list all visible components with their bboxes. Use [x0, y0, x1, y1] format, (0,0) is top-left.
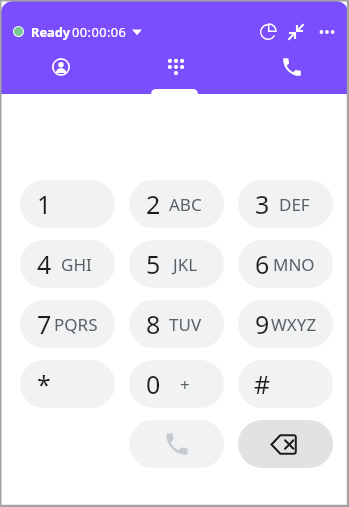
button[interactable]: 3 — [238, 180, 333, 228]
staticText: 5 — [146, 247, 161, 281]
button[interactable]: 4 — [20, 240, 115, 288]
staticText: PQRS — [54, 313, 98, 336]
staticText: + — [180, 373, 190, 396]
staticText: 7 — [37, 307, 52, 341]
staticText: 8 — [146, 307, 161, 341]
staticText: # — [254, 367, 271, 401]
staticText: ABC — [169, 193, 202, 216]
button[interactable]: * — [20, 360, 115, 408]
button[interactable]: Dialpad — [116, 54, 232, 94]
staticText: * — [37, 367, 51, 401]
staticText: JKL — [173, 253, 198, 276]
button[interactable]: Call log — [232, 54, 348, 94]
staticText: 9 — [255, 307, 270, 341]
button[interactable]: Call — [129, 420, 224, 468]
staticText: 00:00:06 — [72, 23, 127, 40]
button[interactable]: 2 — [129, 180, 224, 228]
button[interactable]: Collapse — [284, 20, 307, 43]
staticText: 2 — [146, 187, 161, 221]
staticText: DEF — [279, 193, 310, 216]
staticText: WXYZ — [271, 313, 317, 336]
staticText: 6 — [255, 247, 270, 281]
button[interactable]: More options — [316, 21, 337, 42]
button[interactable]: 9 — [238, 300, 333, 348]
staticText: 0 — [146, 367, 161, 401]
button[interactable]: 7 — [20, 300, 115, 348]
button[interactable]: 1 — [20, 180, 115, 228]
button[interactable]: Statistics — [256, 20, 279, 43]
button[interactable]: 5 — [129, 240, 224, 288]
button[interactable]: 0 — [129, 360, 224, 408]
staticText: Ready — [31, 23, 71, 40]
button[interactable]: Backspace — [238, 420, 333, 468]
staticText: MNO — [273, 253, 315, 276]
staticText: GHI — [61, 253, 92, 276]
button[interactable]: 6 — [238, 240, 333, 288]
staticText: TUV — [169, 313, 202, 336]
staticText: 3 — [255, 187, 270, 221]
button[interactable]: Contacts — [1, 54, 116, 94]
staticText: 1 — [37, 187, 52, 221]
button[interactable]: # — [238, 360, 333, 408]
button[interactable]: 8 — [129, 300, 224, 348]
button[interactable]: Expand status — [128, 22, 146, 40]
staticText: 4 — [37, 247, 52, 281]
